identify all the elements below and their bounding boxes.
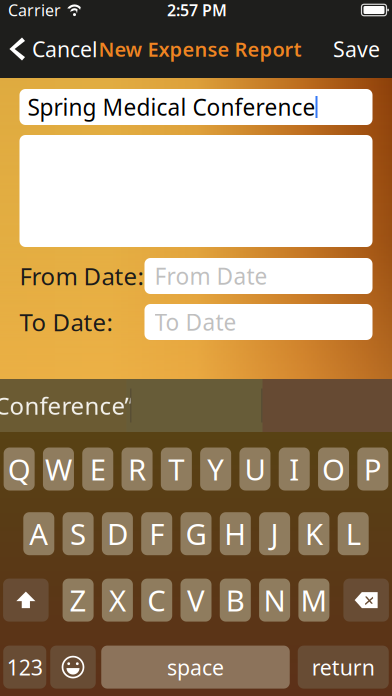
staticText: Save: [333, 35, 380, 63]
button[interactable]: space: [101, 646, 290, 689]
staticText: From Date: [154, 261, 267, 291]
staticText: Carrier: [8, 0, 61, 21]
button[interactable]: I: [279, 447, 310, 490]
button[interactable]: [19, 135, 372, 247]
staticText: S: [70, 514, 86, 553]
staticText: Q: [8, 449, 31, 488]
button[interactable]: P: [357, 447, 388, 490]
button[interactable]: Save: [325, 20, 392, 78]
staticText: E: [90, 449, 106, 488]
button[interactable]: M: [298, 579, 329, 622]
staticText: To Date:: [19, 306, 112, 338]
staticText: P: [364, 449, 382, 488]
button[interactable]: G: [180, 512, 211, 555]
button[interactable]: O: [318, 447, 349, 490]
staticText: B: [226, 581, 245, 620]
button[interactable]: F: [141, 512, 172, 555]
staticText: F: [149, 514, 164, 553]
button[interactable]: D: [102, 512, 133, 555]
button[interactable]: R: [121, 447, 152, 490]
staticText: C: [147, 581, 166, 620]
staticText: J: [271, 514, 279, 553]
staticText: T: [168, 449, 184, 488]
staticText: Spring Medical Conference: [27, 92, 315, 122]
button[interactable]: X: [102, 579, 133, 622]
button[interactable]: From Date: [144, 258, 372, 294]
button[interactable]: A: [23, 512, 54, 555]
staticText: U: [244, 449, 265, 488]
staticText: O: [322, 449, 345, 488]
button[interactable]: Y: [200, 447, 231, 490]
staticText: K: [305, 514, 323, 553]
staticText: 2:57 PM: [167, 0, 227, 21]
button[interactable]: C: [141, 579, 172, 622]
staticText: Z: [70, 581, 87, 620]
staticText: M: [300, 581, 327, 620]
staticText: Y: [207, 449, 224, 488]
staticText: H: [224, 514, 246, 553]
staticText: V: [187, 581, 205, 620]
button[interactable]: J: [259, 512, 290, 555]
staticText: Cancel: [32, 35, 98, 63]
button[interactable]: U: [239, 447, 270, 490]
staticText: W: [45, 449, 72, 488]
button[interactable]: Shift: [3, 579, 49, 622]
staticText: X: [109, 581, 126, 620]
button[interactable]: B: [220, 579, 251, 622]
button[interactable]: Cancel: [0, 20, 104, 78]
staticText: A: [29, 514, 48, 553]
staticText: New Expense Report: [98, 36, 301, 62]
staticText: R: [128, 449, 146, 488]
button[interactable]: return: [298, 646, 389, 689]
button[interactable]: Z: [63, 579, 94, 622]
button[interactable]: K: [298, 512, 329, 555]
staticText: space: [167, 653, 224, 681]
button[interactable]: L: [338, 512, 369, 555]
button[interactable]: Spring Medical Conference: [19, 89, 372, 125]
button[interactable]: W: [43, 447, 74, 490]
staticText: N: [264, 581, 286, 620]
staticText: Conference”: [0, 390, 133, 421]
button[interactable]: Delete: [343, 579, 389, 622]
staticText: 123: [7, 653, 43, 681]
button[interactable]: V: [180, 579, 211, 622]
button[interactable]: E: [82, 447, 113, 490]
staticText: L: [346, 514, 361, 553]
staticText: return: [312, 653, 375, 681]
button[interactable]: T: [161, 447, 192, 490]
button[interactable]: 123: [3, 646, 46, 689]
staticText: G: [185, 514, 206, 553]
button[interactable]: H: [220, 512, 251, 555]
staticText: I: [289, 449, 299, 488]
staticText: To Date: [154, 307, 236, 337]
button[interactable]: N: [259, 579, 290, 622]
staticText: D: [107, 514, 128, 553]
button[interactable]: To Date: [144, 304, 372, 340]
staticText: From Date:: [19, 260, 143, 292]
button[interactable]: S: [63, 512, 94, 555]
button[interactable]: Q: [4, 447, 35, 490]
button[interactable]: Emoji: [50, 646, 96, 689]
button[interactable]: Conference”: [0, 379, 130, 432]
